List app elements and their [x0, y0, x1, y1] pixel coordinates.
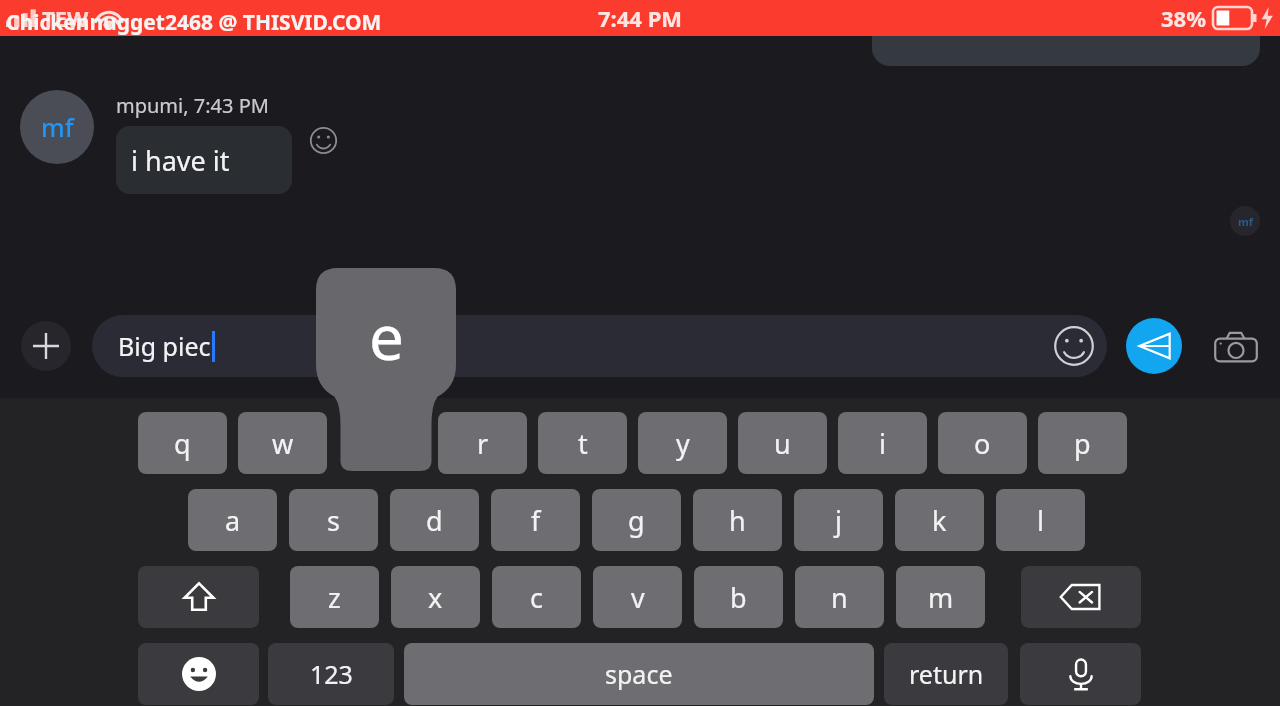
staticText: p	[1074, 425, 1091, 462]
button[interactable]: Voice input	[1020, 643, 1141, 705]
button[interactable]: q	[138, 412, 227, 474]
button[interactable]: p	[1038, 412, 1127, 474]
staticText: k	[932, 502, 947, 539]
button[interactable]: s	[289, 489, 378, 551]
button[interactable]: Emoji keyboard	[138, 643, 259, 705]
staticText: c	[530, 579, 543, 616]
button[interactable]: space	[404, 643, 874, 705]
button[interactable]: m	[896, 566, 985, 628]
button[interactable]: Shift	[138, 566, 259, 628]
button[interactable]: Send	[1126, 318, 1182, 374]
staticText: y	[676, 425, 690, 462]
staticText: 7:44 PM	[598, 3, 683, 33]
button[interactable]: j	[794, 489, 883, 551]
staticText: mpumi, 7:43 PM	[116, 92, 269, 119]
button[interactable]: o	[938, 412, 1027, 474]
button[interactable]: d	[390, 489, 479, 551]
button[interactable]: k	[895, 489, 984, 551]
button[interactable]: h	[693, 489, 782, 551]
staticText: TEW	[42, 3, 89, 33]
staticText: h	[729, 502, 746, 539]
staticText: o	[974, 425, 991, 462]
button[interactable]: u	[738, 412, 827, 474]
button[interactable]: v	[593, 566, 682, 628]
staticText: z	[328, 579, 341, 616]
button[interactable]: return	[884, 643, 1008, 705]
staticText: Fill ur mouth with shit bb	[890, 7, 1172, 40]
staticText: l	[1037, 502, 1044, 539]
staticText: m	[928, 579, 954, 616]
staticText: 123	[310, 657, 353, 691]
staticText: mf	[41, 110, 74, 144]
staticText: 38%	[1161, 3, 1207, 33]
button[interactable]: r	[438, 412, 527, 474]
button[interactable]: mf	[20, 90, 94, 164]
staticText: w	[272, 425, 294, 462]
button[interactable]: 123	[268, 643, 394, 705]
staticText: d	[426, 502, 443, 539]
button[interactable]: Emoji	[1053, 325, 1095, 367]
button[interactable]: f	[491, 489, 580, 551]
staticText: f	[531, 502, 541, 539]
staticText: Chickennugget2468 @ THISVID.COM	[6, 8, 382, 37]
button[interactable]: React	[309, 126, 338, 155]
button[interactable]: i have it	[116, 126, 292, 194]
button[interactable]: x	[391, 566, 480, 628]
staticText: g	[628, 502, 645, 539]
staticText: r	[477, 425, 489, 462]
button[interactable]: g	[592, 489, 681, 551]
button[interactable]: i	[838, 412, 927, 474]
button[interactable]: Backspace	[1021, 566, 1141, 628]
button[interactable]: Camera	[1210, 324, 1262, 376]
staticText: v	[631, 579, 645, 616]
button[interactable]: a	[188, 489, 277, 551]
button[interactable]: n	[795, 566, 884, 628]
button[interactable]: l	[996, 489, 1085, 551]
staticText: i have it	[131, 142, 230, 179]
button[interactable]: Big piec	[92, 315, 1107, 377]
staticText: return	[909, 657, 984, 691]
button[interactable]: Fill ur mouth with shit bb	[872, 0, 1260, 66]
staticText: u	[774, 425, 791, 462]
staticText: i	[879, 425, 886, 462]
button[interactable]: b	[694, 566, 783, 628]
staticText: q	[174, 425, 191, 462]
button[interactable]: c	[492, 566, 581, 628]
staticText: s	[327, 502, 340, 539]
staticText: b	[730, 579, 747, 616]
staticText: e	[369, 294, 404, 378]
button[interactable]: z	[290, 566, 379, 628]
staticText: Big piec	[118, 329, 211, 363]
button[interactable]: y	[638, 412, 727, 474]
staticText: j	[835, 502, 842, 539]
staticText: t	[578, 425, 588, 462]
staticText: a	[225, 502, 241, 539]
button[interactable]: t	[538, 412, 627, 474]
button[interactable]: w	[238, 412, 327, 474]
staticText: x	[428, 579, 443, 616]
staticText: space	[605, 657, 673, 691]
staticText: n	[831, 579, 848, 616]
staticText: mf	[1238, 214, 1253, 229]
button[interactable]: Add attachment	[21, 321, 71, 371]
